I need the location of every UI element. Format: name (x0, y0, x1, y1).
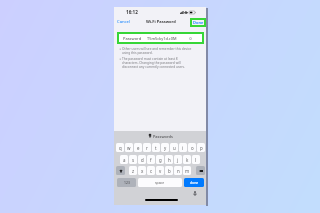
staticText: u (173, 145, 176, 151)
button[interactable]: e (134, 143, 142, 152)
staticText: Done (193, 20, 204, 25)
button[interactable]: p (197, 143, 205, 152)
button[interactable]: c (147, 166, 155, 175)
staticText: 16:12 (126, 9, 138, 15)
staticText: Other users will see and remember this d… (122, 47, 194, 55)
button[interactable]: l (192, 155, 200, 164)
staticText: y (164, 145, 167, 151)
staticText: Wi-Fi Password (146, 19, 176, 24)
staticText: j (177, 157, 179, 163)
button[interactable]: Password (118, 33, 203, 43)
button[interactable]: n (174, 166, 182, 175)
staticText: g (159, 157, 162, 163)
other: Clear text (189, 37, 192, 40)
staticText: space (155, 180, 165, 185)
button[interactable]: a (120, 155, 128, 164)
staticText: a (123, 157, 126, 163)
button[interactable]: z (129, 166, 137, 175)
staticText: v (159, 168, 162, 174)
staticText: n (177, 168, 180, 174)
button[interactable]: space (138, 178, 182, 187)
staticText: c (150, 168, 153, 174)
staticText: m (185, 168, 190, 174)
button[interactable]: d (138, 155, 146, 164)
staticText: x (141, 168, 144, 174)
button[interactable]: g (156, 155, 164, 164)
button[interactable]: done (184, 178, 204, 187)
button[interactable]: q (116, 143, 124, 152)
staticText: t (155, 145, 157, 151)
button[interactable]: b (165, 166, 173, 175)
button[interactable]: w (125, 143, 133, 152)
button[interactable]: t (152, 143, 160, 152)
button[interactable]: v (156, 166, 164, 175)
staticText: p (200, 145, 203, 151)
staticText: o (191, 145, 194, 151)
button[interactable]: Shift (116, 166, 125, 175)
staticText: z (132, 168, 135, 174)
button[interactable]: r (143, 143, 151, 152)
staticText: b (168, 168, 171, 174)
staticText: Passwords (153, 134, 173, 139)
button[interactable]: m (183, 166, 191, 175)
staticText: q (119, 145, 122, 151)
staticText: The password must contain at least 8 cha… (122, 57, 194, 69)
button[interactable]: j (174, 155, 182, 164)
staticText: l (195, 157, 197, 163)
staticText: f (150, 157, 152, 163)
button[interactable]: s (129, 155, 137, 164)
button[interactable]: o (188, 143, 196, 152)
staticText: w (127, 145, 131, 151)
button[interactable]: Cancel (114, 16, 134, 27)
staticText: e (137, 145, 140, 151)
button[interactable]: Done (190, 18, 206, 27)
button[interactable]: i (179, 143, 187, 152)
button[interactable]: y (161, 143, 169, 152)
button[interactable]: h (165, 155, 173, 164)
staticText: 123 (124, 180, 130, 185)
button[interactable]: 123 (117, 178, 136, 187)
staticText: h (168, 157, 171, 163)
staticText: Cancel (117, 19, 131, 25)
button[interactable]: Delete (196, 166, 205, 175)
staticText: s (132, 157, 135, 163)
button[interactable]: u (170, 143, 178, 152)
staticText: Password (123, 36, 142, 41)
button[interactable]: x (138, 166, 146, 175)
button[interactable]: Passwords (114, 132, 206, 140)
button[interactable]: k (183, 155, 191, 164)
staticText: i (182, 145, 184, 151)
button[interactable]: f (147, 155, 155, 164)
staticText: d (141, 157, 144, 163)
staticText: r (146, 145, 148, 151)
staticText: done (190, 180, 199, 185)
staticText: T5m5cky1d.c0M (147, 36, 177, 41)
staticText: k (186, 157, 189, 163)
other: Dictation (193, 191, 197, 196)
